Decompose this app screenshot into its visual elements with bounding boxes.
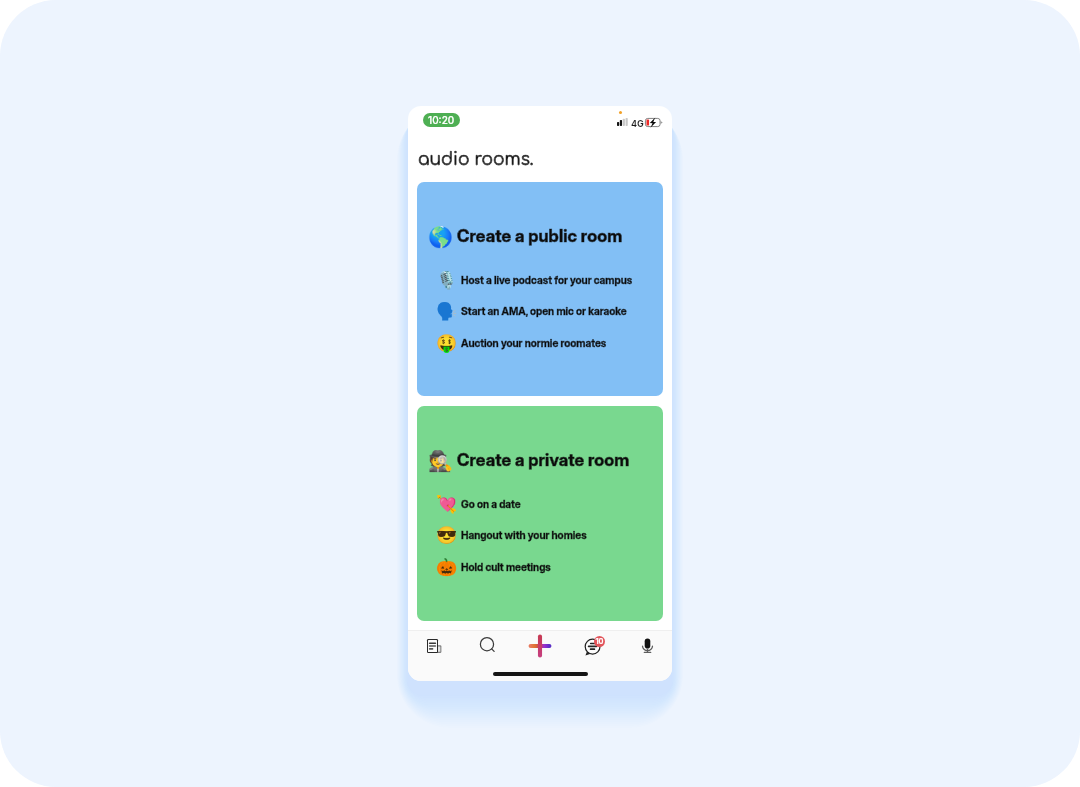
button[interactable]: News feed xyxy=(417,632,451,660)
button[interactable]: Messages, 10 unread xyxy=(578,631,612,659)
staticText: 🕵️ xyxy=(428,449,453,472)
staticText: Hangout with your homies xyxy=(461,529,587,542)
staticText: 😎 xyxy=(436,525,458,545)
button[interactable]: 🌎 xyxy=(417,182,663,396)
staticText: audio rooms. xyxy=(418,150,534,169)
staticText: 4G xyxy=(631,118,644,129)
staticText: Host a live podcast for your campus xyxy=(461,274,633,287)
staticText: 💘 xyxy=(436,494,458,514)
staticText: Hold cult meetings xyxy=(461,561,551,574)
staticText: 🎃 xyxy=(436,557,458,577)
staticText: audio rooms. xyxy=(418,150,534,169)
staticText: Hold cult meetings xyxy=(461,561,551,574)
staticText: 🎙️ xyxy=(436,270,458,290)
staticText: 10 xyxy=(595,637,604,646)
button[interactable]: Create a room xyxy=(523,632,557,660)
button[interactable]: Search xyxy=(470,631,504,659)
staticText: Create a private room xyxy=(457,450,630,471)
button[interactable]: 🕵️ xyxy=(417,406,663,621)
staticText: Start an AMA, open mic or karaoke xyxy=(461,305,627,318)
staticText: Auction your normie roomates xyxy=(461,337,607,350)
staticText: Host a live podcast for your campus xyxy=(461,274,633,287)
staticText: Hangout with your homies xyxy=(461,529,587,542)
staticText: Start an AMA, open mic or karaoke xyxy=(461,305,627,318)
staticText: Create a public room xyxy=(457,226,623,247)
staticText: 🌎 xyxy=(428,225,453,248)
staticText: Create a public room xyxy=(457,226,623,247)
button[interactable]: Microphone xyxy=(630,631,664,659)
staticText: 🗣️ xyxy=(436,301,458,321)
staticText: Go on a date xyxy=(461,498,521,511)
staticText: Auction your normie roomates xyxy=(461,337,607,350)
staticText: 10:20 xyxy=(428,114,455,126)
staticText: Go on a date xyxy=(461,498,521,511)
staticText: 🤑 xyxy=(436,333,458,353)
staticText: Create a private room xyxy=(457,450,630,471)
